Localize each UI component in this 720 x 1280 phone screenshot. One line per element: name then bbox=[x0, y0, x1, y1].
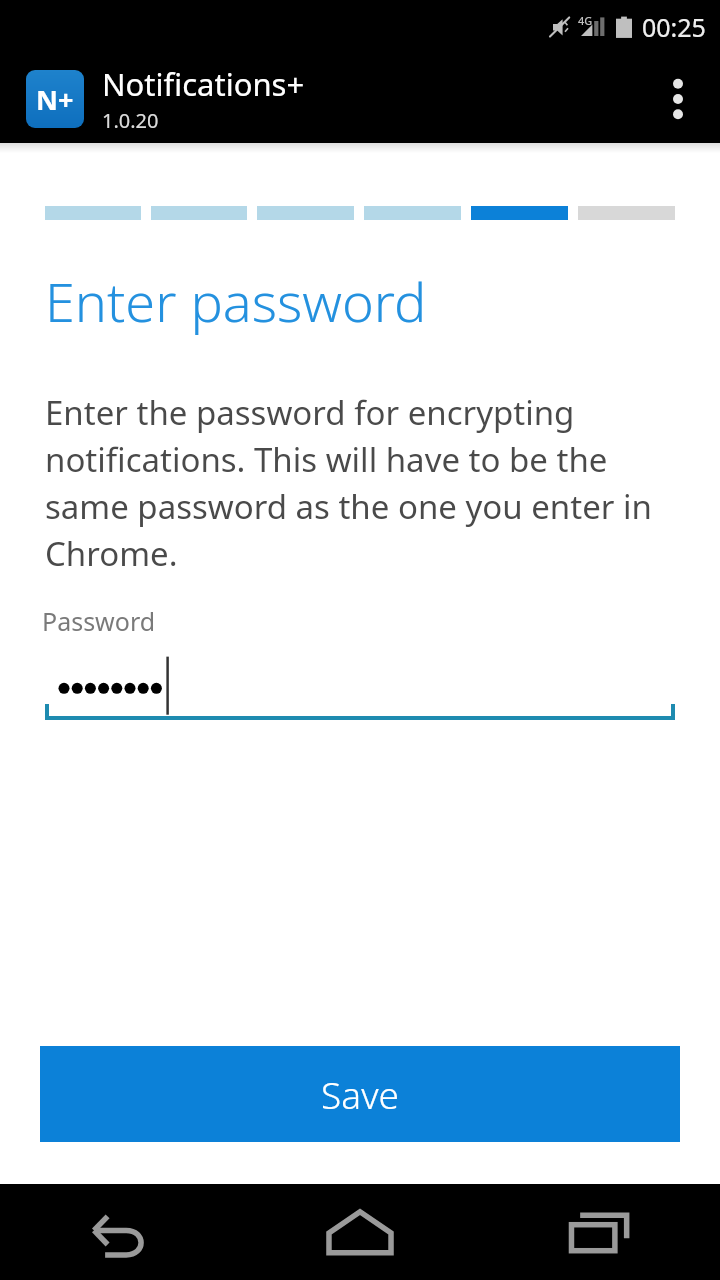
button[interactable]: More options bbox=[650, 54, 706, 143]
staticText: Enter the password for encrypting notifi… bbox=[45, 390, 680, 576]
button[interactable]: Password field bbox=[45, 654, 675, 720]
staticText: Password bbox=[42, 604, 156, 638]
staticText: 00:25 bbox=[642, 10, 706, 44]
staticText: 1.0.20 bbox=[102, 107, 159, 134]
button[interactable]: Home bbox=[240, 1184, 480, 1280]
staticText: 4G bbox=[578, 13, 593, 28]
button[interactable]: Save bbox=[40, 1046, 680, 1142]
staticText: Enter password bbox=[45, 264, 427, 338]
button[interactable]: Back bbox=[0, 1184, 240, 1280]
button[interactable]: Recent apps bbox=[480, 1184, 720, 1280]
staticText: Notifications+ bbox=[102, 63, 305, 105]
staticText: N+ bbox=[36, 81, 74, 118]
staticText: Save bbox=[321, 1069, 399, 1119]
